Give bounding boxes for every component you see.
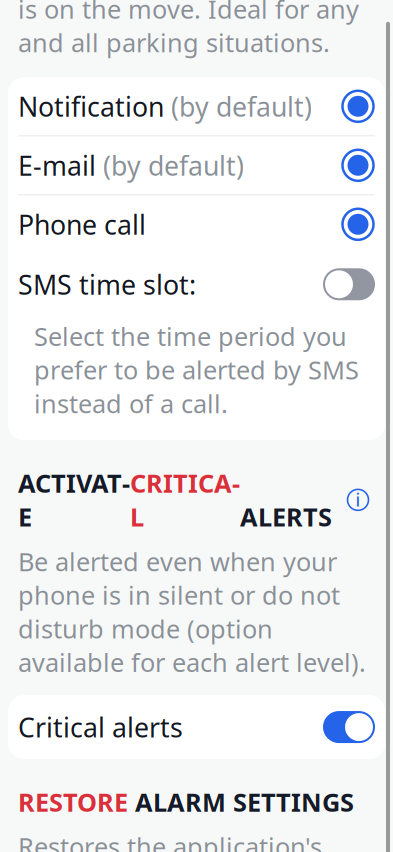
staticText: Be alerted when your vehicle is on the m…: [18, 0, 363, 59]
staticText: (by default): [171, 89, 312, 124]
staticText: ALARM SETTINGS: [128, 785, 354, 819]
staticText: Be alerted even when your phone is in si…: [18, 544, 366, 679]
button[interactable]: Phone call: [8, 195, 385, 253]
button[interactable]: Critical alerts: [8, 695, 385, 759]
button[interactable]: E-mail: [8, 136, 385, 194]
staticText: Notification: [18, 89, 164, 124]
staticText: E-mail: [18, 148, 96, 183]
button[interactable]: More information about critical alerts: [346, 488, 370, 512]
staticText: ACTIVATE: [18, 466, 130, 533]
staticText: (by default): [103, 148, 244, 183]
staticText: Select the time period you prefer to be …: [34, 319, 359, 420]
staticText: RESTORE: [18, 785, 128, 819]
staticText: ALERTS: [240, 466, 346, 533]
button[interactable]: Notification: [8, 77, 385, 135]
staticText: Critical alerts: [18, 709, 183, 745]
button[interactable]: SMS time slot:: [8, 253, 385, 315]
staticText: Restores the application's default anti-…: [18, 830, 375, 852]
staticText: Phone call: [18, 207, 146, 242]
staticText: SMS time slot:: [18, 267, 196, 302]
staticText: CRITICAL: [130, 466, 240, 533]
staticText: i: [355, 488, 360, 511]
